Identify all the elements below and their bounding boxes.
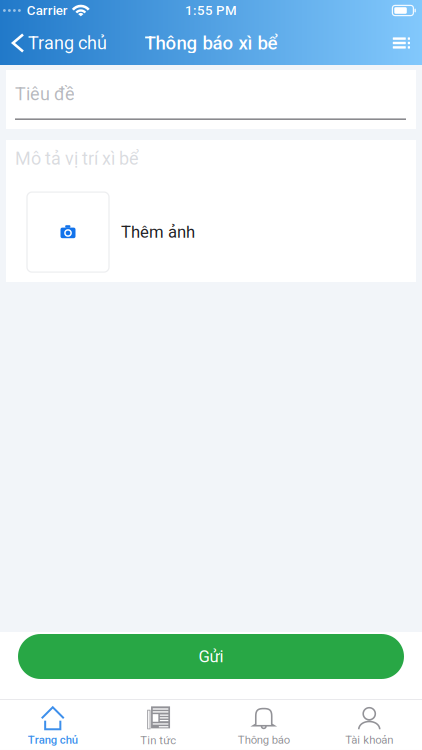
button[interactable]: Tài khoản — [316, 699, 422, 750]
staticText: Thông báo — [238, 733, 290, 747]
staticText: Tài khoản — [345, 733, 393, 747]
button[interactable]: Trang chủ — [0, 699, 105, 750]
staticText: Thông báo xì bể — [144, 32, 277, 54]
button[interactable]: Menu — [381, 27, 422, 59]
staticText: Trang chủ — [28, 32, 107, 54]
button[interactable]: Thêm ảnh — [27, 192, 109, 272]
button[interactable]: Gửi — [18, 634, 404, 679]
button[interactable]: Thông báo — [211, 699, 316, 750]
staticText: Gửi — [198, 647, 223, 666]
staticText: Thêm ảnh — [121, 222, 195, 242]
button[interactable]: Tin tức — [105, 699, 211, 750]
staticText: 1:55 PM — [185, 3, 237, 18]
staticText: Carrier — [27, 3, 68, 18]
staticText: Mô tả vị trí xì bể — [15, 148, 139, 169]
staticText: Tiêu đề — [15, 84, 75, 105]
button[interactable]: Trang chủ — [0, 26, 107, 60]
staticText: Tin tức — [140, 734, 176, 747]
staticText: Trang chủ — [28, 733, 78, 747]
